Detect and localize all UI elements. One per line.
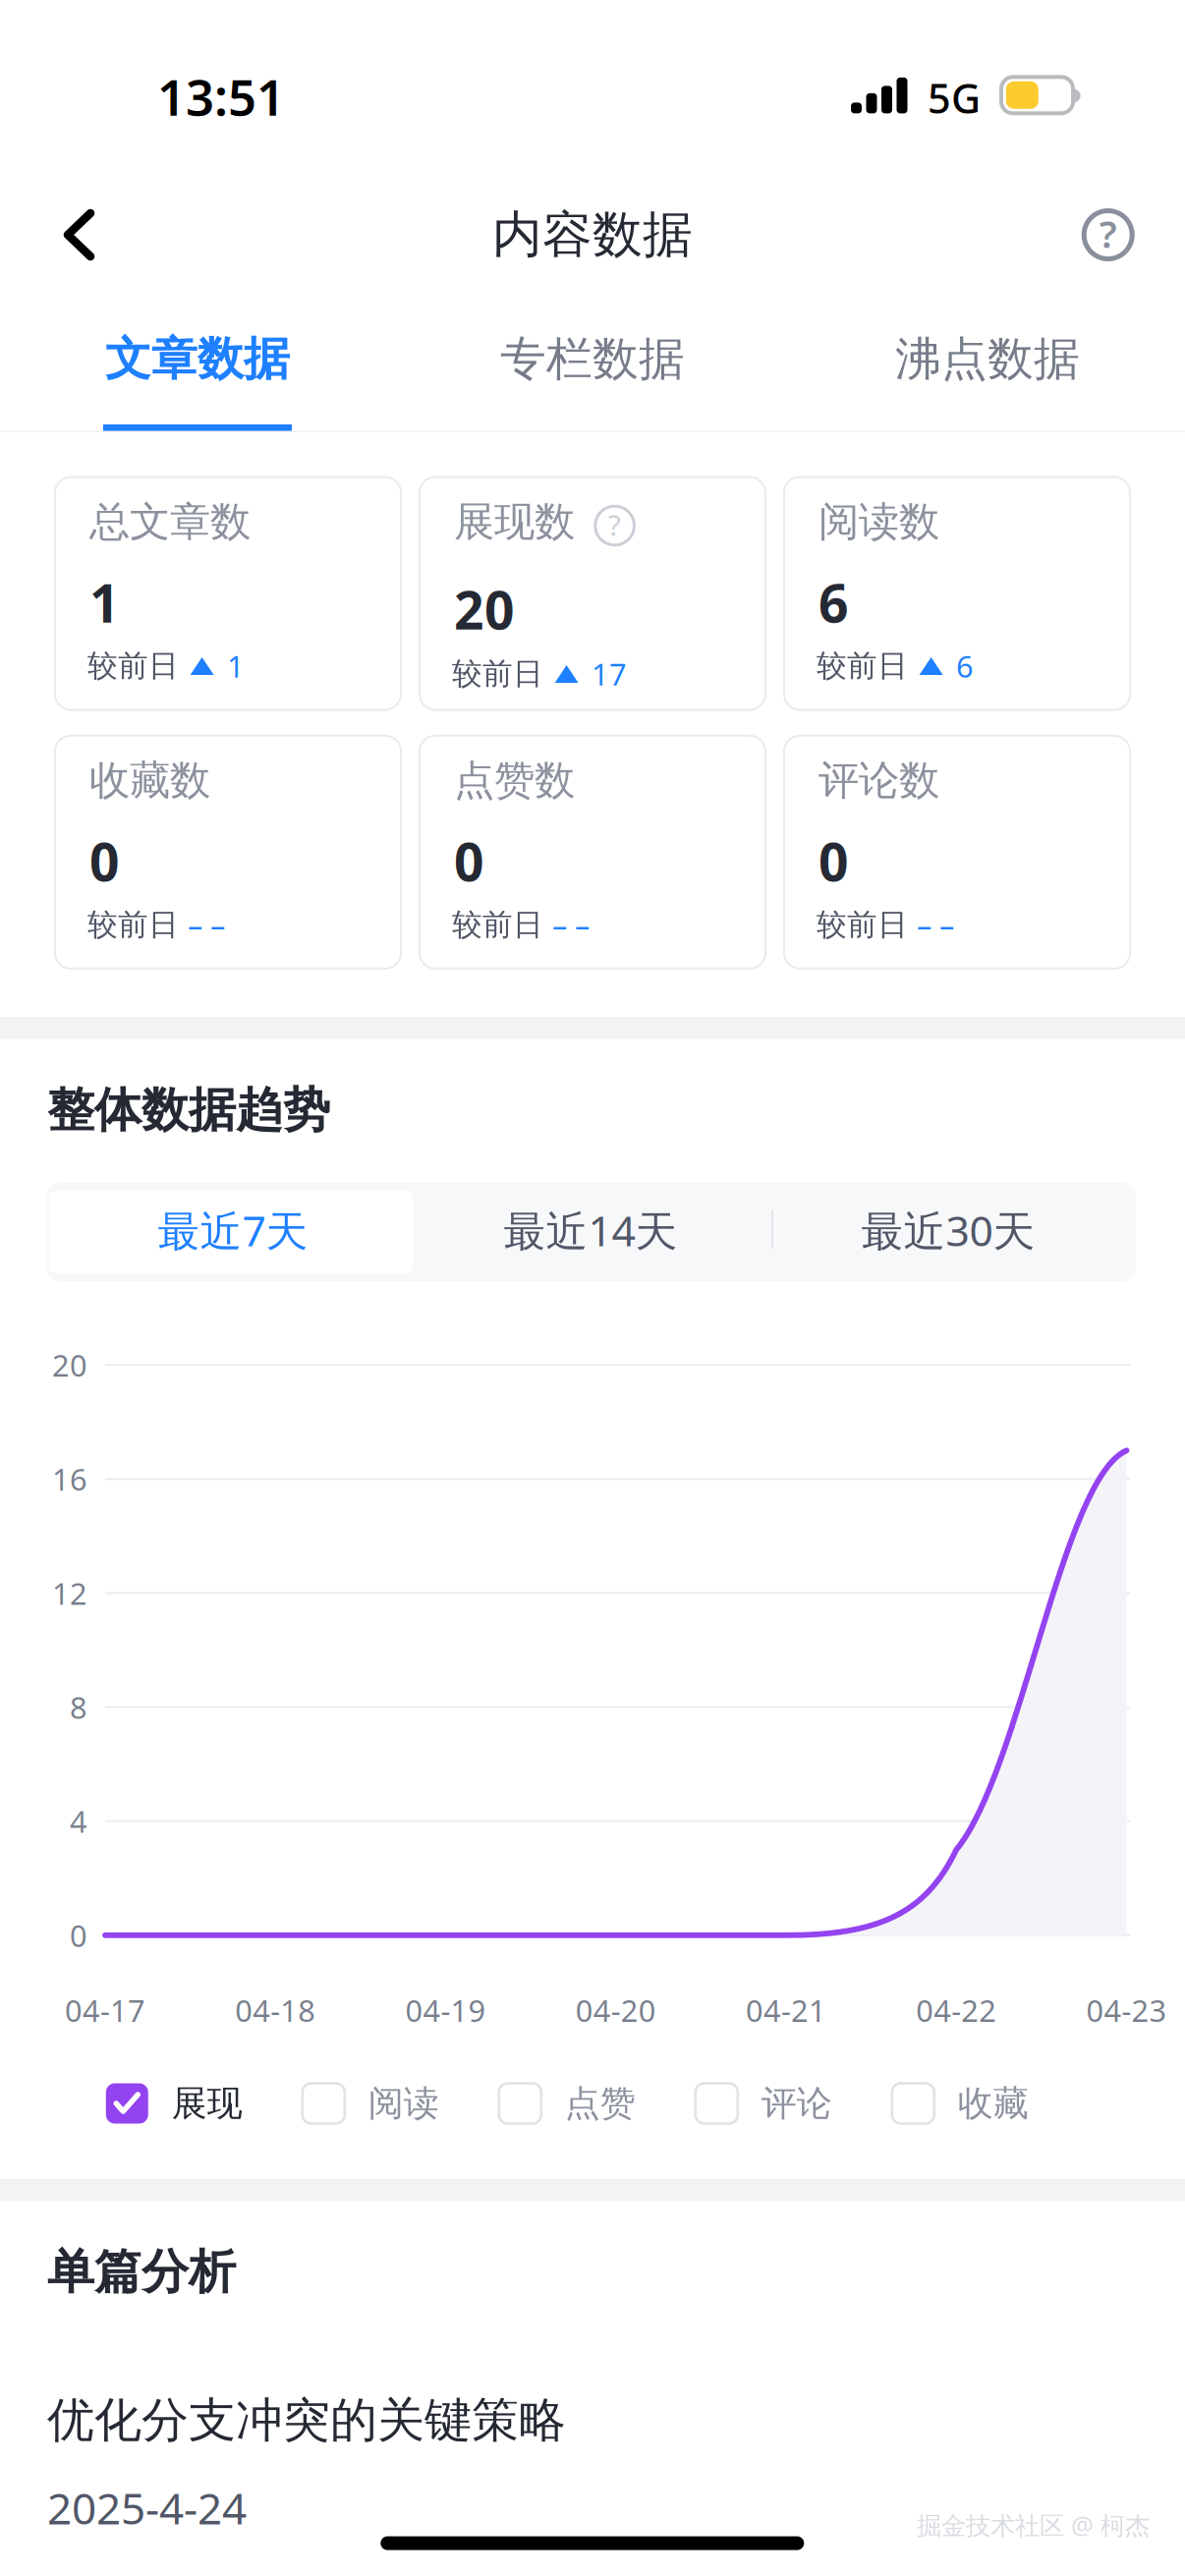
staticText: ? (608, 505, 621, 544)
button[interactable]: 点赞 (499, 2073, 656, 2134)
staticText: 最近7天 (158, 1202, 308, 1258)
staticText: 5G (928, 71, 981, 125)
button[interactable]: 最近7天 (54, 1188, 412, 1272)
staticText: 较前日 (87, 906, 179, 943)
staticText: 点赞 (565, 2082, 636, 2125)
staticText: 评论数 (818, 756, 939, 806)
staticText: 总文章数 (89, 497, 251, 547)
staticText: 13:51 (157, 63, 285, 129)
staticText: 04-17 (65, 1990, 145, 2030)
button[interactable]: About 展现数 (585, 496, 644, 555)
staticText: – – (917, 905, 954, 945)
button[interactable]: 收藏 (892, 2073, 1049, 2134)
staticText: 12 (52, 1573, 87, 1613)
staticText: 0 (454, 826, 484, 896)
button[interactable]: 专栏数据 (395, 290, 790, 428)
staticText: 0 (70, 1915, 87, 1955)
staticText: 04-20 (576, 1990, 656, 2030)
staticText: 20 (52, 1345, 87, 1385)
staticText: 收藏 (958, 2082, 1029, 2125)
staticText: 较前日 (87, 647, 179, 684)
staticText: 16 (52, 1459, 87, 1499)
staticText: 单篇分析 (47, 2243, 236, 2301)
staticText: 4 (70, 1801, 87, 1841)
button[interactable]: 展现 (106, 2073, 263, 2134)
button[interactable]: 阅读 (302, 2073, 460, 2134)
button[interactable]: 沸点数据 (790, 290, 1185, 428)
staticText: 阅读 (368, 2082, 439, 2125)
staticText: 20 (454, 574, 515, 644)
button[interactable]: 文章数据 (0, 290, 395, 428)
staticText: 最近14天 (504, 1202, 677, 1258)
button[interactable]: Back (20, 176, 138, 294)
staticText: – – (188, 905, 225, 945)
staticText: 文章数据 (105, 331, 290, 387)
button[interactable]: 优化分支冲突的关键策略 (0, 2360, 1185, 2567)
staticText: – – (552, 905, 590, 945)
staticText: 04-23 (1086, 1990, 1167, 2030)
staticText: ? (1099, 208, 1117, 258)
staticText: 阅读数 (818, 497, 939, 547)
staticText: 较前日 (817, 647, 908, 684)
staticText: 优化分支冲突的关键策略 (47, 2391, 566, 2449)
staticText: 展现 (172, 2082, 243, 2125)
staticText: 04-19 (405, 1990, 486, 2030)
staticText: 04-18 (235, 1990, 316, 2030)
button[interactable]: 评论 (695, 2073, 853, 2134)
staticText: 评论 (761, 2082, 832, 2125)
staticText: 2025-4-24 (47, 2479, 247, 2536)
staticText: 0 (89, 826, 120, 896)
staticText: 17 (592, 654, 627, 694)
staticText: 沸点数据 (895, 331, 1080, 387)
button[interactable]: 最近30天 (769, 1188, 1127, 1272)
staticText: 较前日 (817, 906, 908, 943)
staticText: 内容数据 (492, 204, 693, 265)
staticText: 展现数 (454, 497, 575, 547)
staticText: 掘金技术社区 @ 柯杰 (917, 2508, 1150, 2541)
staticText: 较前日 (452, 655, 543, 692)
button[interactable]: Help (1059, 186, 1157, 284)
staticText: 收藏数 (89, 756, 210, 806)
staticText: 1 (227, 646, 245, 686)
staticText: 04-22 (916, 1990, 997, 2030)
button[interactable]: 最近14天 (412, 1188, 769, 1272)
staticText: 04-21 (746, 1990, 826, 2030)
staticText: 最近30天 (861, 1202, 1035, 1258)
staticText: 6 (956, 646, 974, 686)
staticText: 0 (818, 826, 849, 896)
staticText: 1 (89, 567, 120, 637)
staticText: 点赞数 (454, 756, 575, 806)
staticText: 6 (818, 567, 849, 637)
staticText: 整体数据趋势 (47, 1081, 330, 1139)
staticText: 较前日 (452, 906, 543, 943)
staticText: 8 (70, 1687, 87, 1727)
staticText: 专栏数据 (500, 331, 685, 387)
